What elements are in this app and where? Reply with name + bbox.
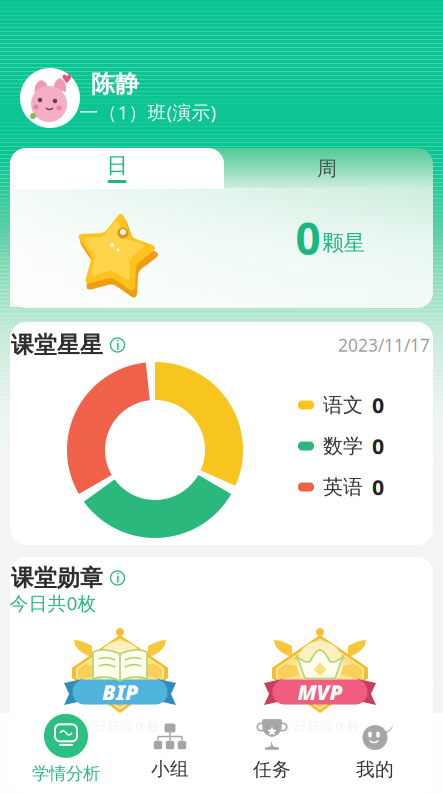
staticText: 我的	[356, 758, 394, 781]
staticText: 陈静	[91, 69, 139, 99]
staticText: 一（1）班(演示)	[79, 100, 216, 124]
staticText: 0	[372, 473, 384, 501]
staticText: 今日共0枚	[9, 591, 96, 615]
staticText: 周	[317, 156, 337, 181]
staticText: 课堂勋章	[11, 564, 103, 592]
staticText: 今日获得 0 枚	[80, 717, 159, 735]
button[interactable]: 任务	[227, 716, 317, 788]
staticText: 英语	[323, 475, 363, 499]
staticText: BIP	[102, 678, 138, 706]
staticText: i	[116, 337, 119, 353]
button[interactable]: 我的	[330, 716, 420, 788]
button[interactable]: 小组	[125, 716, 215, 788]
staticText: 今日获得 0 枚	[280, 717, 359, 735]
button[interactable]: 日	[10, 148, 224, 189]
staticText: 学情分析	[32, 763, 100, 784]
staticText: ♥	[61, 72, 72, 86]
button[interactable]: 学情分析	[16, 710, 116, 788]
button[interactable]: 个人头像	[20, 68, 80, 128]
staticText: 0	[372, 391, 384, 419]
staticText: i	[116, 570, 119, 586]
staticText: MVP	[297, 678, 342, 706]
staticText: 语文	[323, 393, 363, 417]
staticText: 2023/11/17	[338, 333, 430, 356]
staticText: 课堂星星	[11, 331, 103, 359]
staticText: 数学	[323, 434, 363, 458]
staticText: 颗星	[322, 230, 364, 256]
button[interactable]: 周	[237, 148, 417, 189]
staticText: 任务	[253, 758, 291, 781]
staticText: 日	[106, 152, 127, 179]
staticText: 0	[372, 432, 384, 460]
staticText: 0	[295, 209, 320, 267]
staticText: 小组	[151, 757, 189, 780]
